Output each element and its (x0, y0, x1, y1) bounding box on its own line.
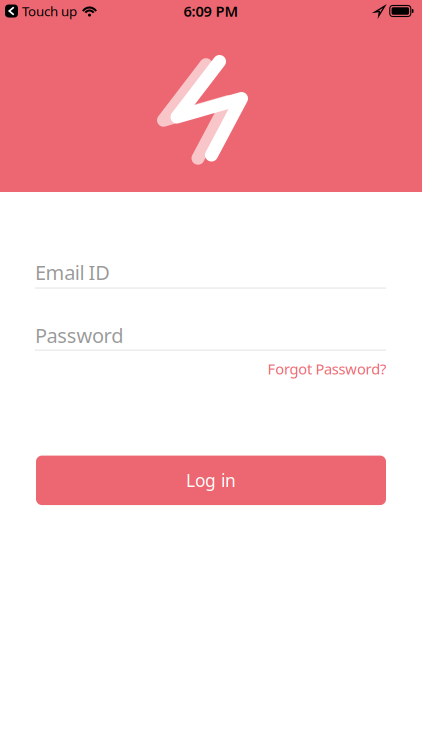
button[interactable]: Password (35, 322, 386, 351)
staticText: Touch up (22, 2, 77, 20)
button[interactable]: Forgot Password? (267, 359, 386, 379)
staticText: Log in (186, 469, 236, 492)
staticText: Password (35, 322, 123, 349)
staticText: Forgot Password? (267, 359, 386, 379)
button[interactable]: Back to Touch up (5, 2, 77, 20)
button[interactable]: Log in (36, 456, 386, 505)
staticText: Email ID (35, 259, 110, 286)
staticText: 6:09 PM (183, 1, 238, 21)
button[interactable]: Email ID (35, 259, 386, 289)
